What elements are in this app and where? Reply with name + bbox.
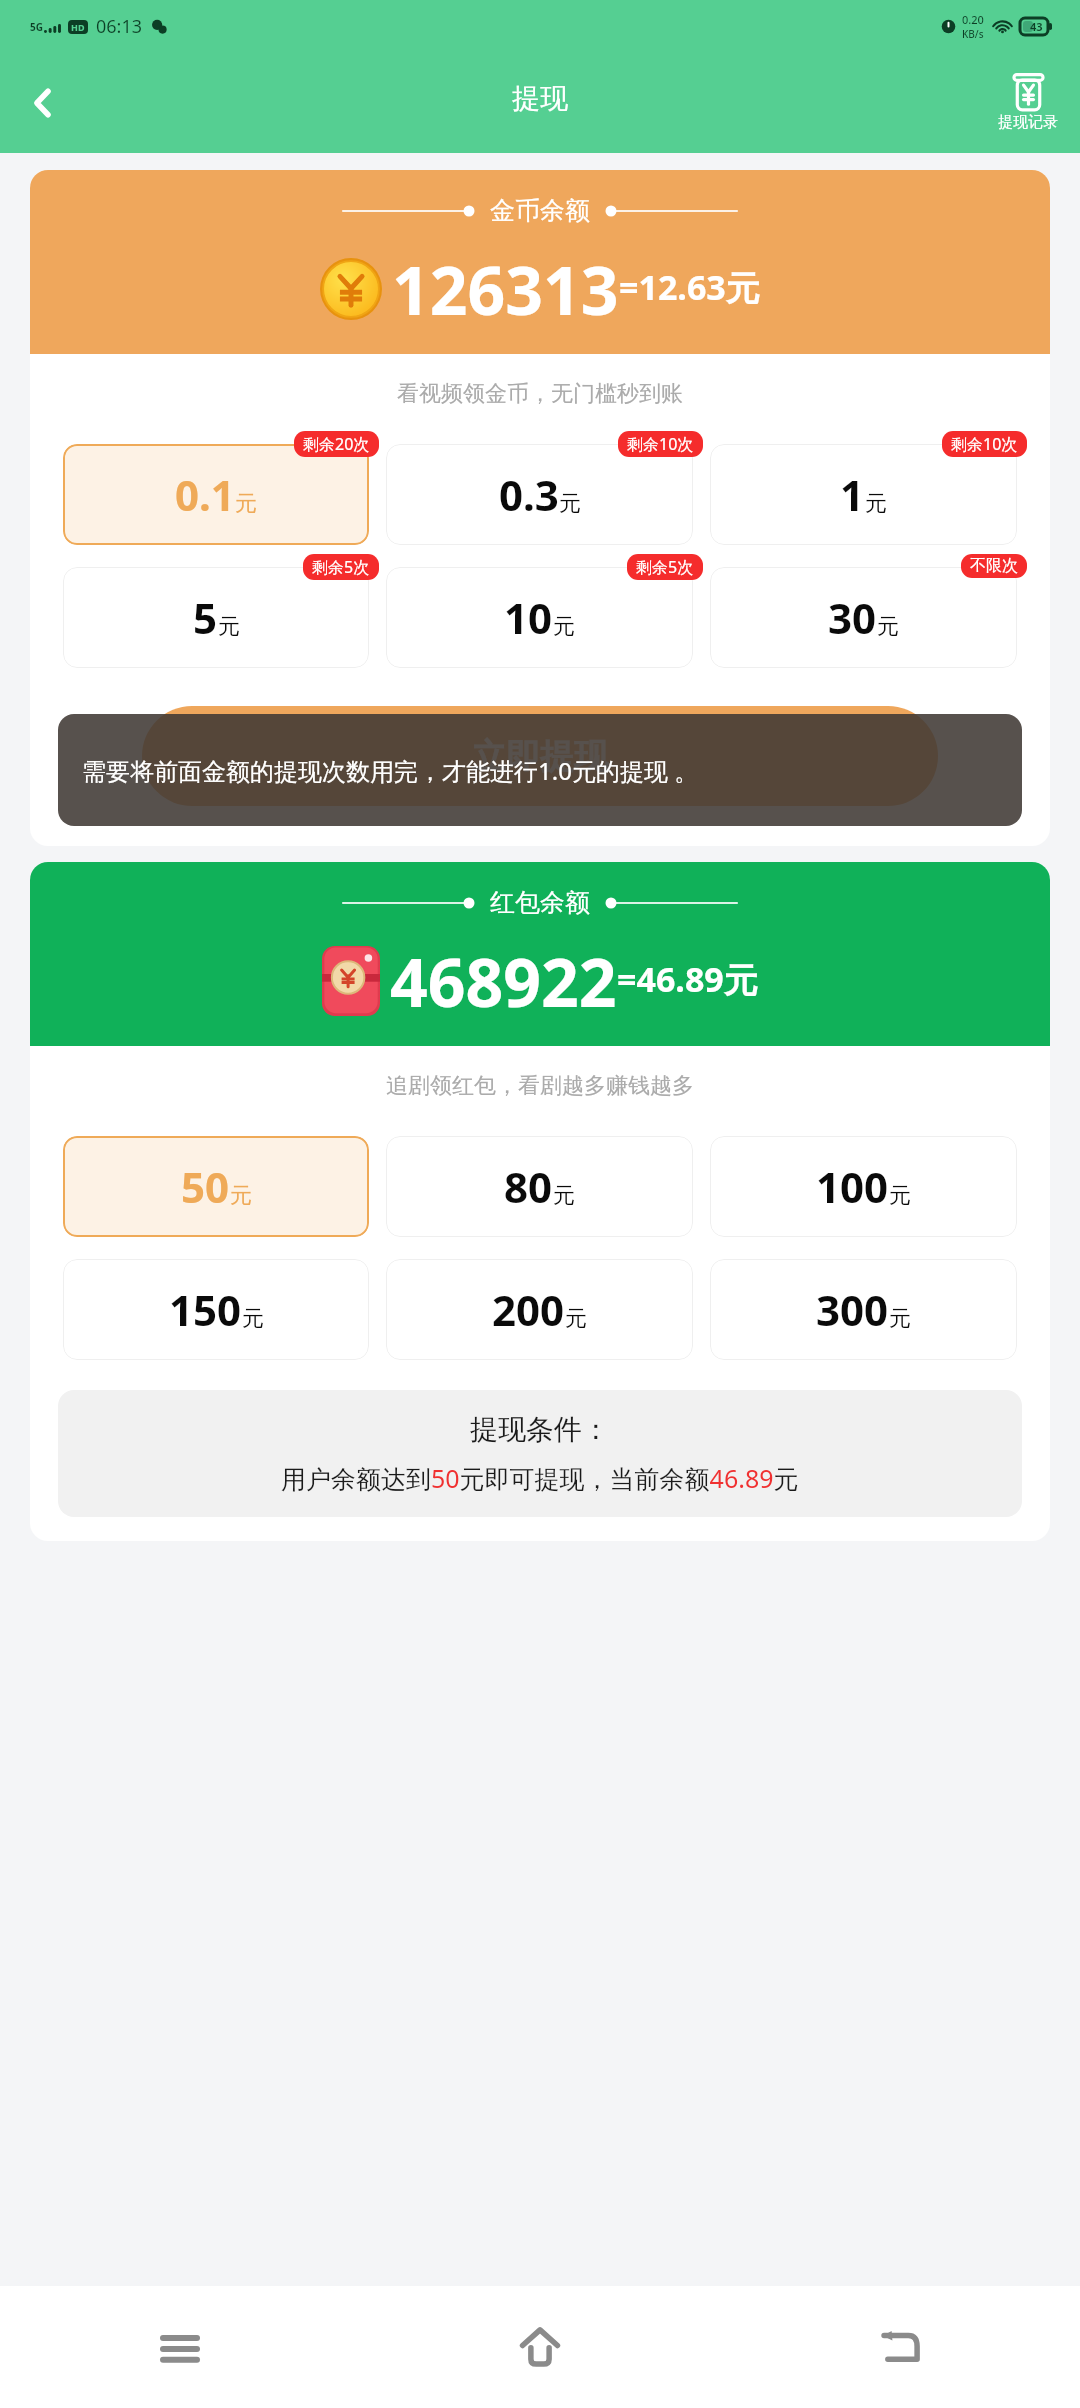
- staticText: 用户余额达到50元即可提现，当前余额46.89元: [281, 1461, 799, 1495]
- staticText: 剩余10次: [951, 433, 1018, 455]
- button[interactable]: 50: [63, 1136, 369, 1237]
- button[interactable]: 0.3: [386, 444, 693, 545]
- button[interactable]: 1: [710, 444, 1017, 545]
- button[interactable]: 150: [63, 1259, 369, 1360]
- staticText: 元: [242, 1305, 264, 1333]
- staticText: 剩余20次: [303, 433, 370, 455]
- staticText: 06:13: [96, 14, 143, 39]
- staticText: 元: [235, 490, 257, 518]
- button[interactable]: 立即提现: [142, 706, 938, 806]
- staticText: 0.1: [175, 466, 235, 523]
- staticText: 50: [181, 1158, 230, 1215]
- staticText: 元: [553, 613, 575, 641]
- staticText: 元: [559, 490, 581, 518]
- staticText: 提现: [512, 81, 568, 116]
- staticText: 需要将前面金额的提现次数用完，才能进行1.0元的提现 。: [82, 754, 699, 787]
- staticText: 元: [553, 1182, 575, 1210]
- staticText: 0.3: [499, 466, 559, 523]
- staticText: KB/s: [962, 27, 984, 41]
- button[interactable]: 300: [710, 1259, 1017, 1360]
- button[interactable]: 5: [63, 567, 369, 668]
- staticText: 10: [504, 589, 553, 646]
- staticText: 剩余5次: [312, 556, 370, 578]
- button[interactable]: Home: [360, 2286, 720, 2408]
- staticText: 元: [230, 1182, 252, 1210]
- staticText: 元: [877, 613, 899, 641]
- button[interactable]: Back: [720, 2286, 1080, 2408]
- staticText: 金币余额: [490, 195, 590, 226]
- staticText: =46.89元: [617, 956, 758, 1002]
- staticText: 元: [889, 1305, 911, 1333]
- staticText: 200: [492, 1281, 565, 1338]
- staticText: 468922: [390, 936, 617, 1026]
- staticText: 不限次: [970, 556, 1018, 576]
- staticText: 红包余额: [490, 887, 590, 918]
- staticText: 看视频领金币，无门槛秒到账: [30, 380, 1050, 408]
- button[interactable]: 200: [386, 1259, 693, 1360]
- button[interactable]: 30: [710, 567, 1017, 668]
- staticText: 30: [828, 589, 877, 646]
- button[interactable]: 0.1: [63, 444, 369, 545]
- button[interactable]: 10: [386, 567, 693, 668]
- staticText: 元: [865, 490, 887, 518]
- staticText: =12.63元: [619, 264, 760, 310]
- staticText: 80: [504, 1158, 553, 1215]
- staticText: 提现条件：: [470, 1412, 610, 1447]
- staticText: 追剧领红包，看剧越多赚钱越多: [30, 1072, 1050, 1100]
- staticText: 5G: [30, 20, 43, 34]
- staticText: 43: [1030, 19, 1043, 34]
- staticText: 5: [193, 589, 218, 646]
- staticText: 元: [565, 1305, 587, 1333]
- staticText: 剩余5次: [636, 556, 694, 578]
- staticText: 100: [816, 1158, 889, 1215]
- staticText: 126313: [392, 244, 619, 334]
- staticText: 1: [840, 466, 865, 523]
- button[interactable]: 80: [386, 1136, 693, 1237]
- button[interactable]: Recents: [0, 2286, 360, 2408]
- staticText: 元: [218, 613, 240, 641]
- staticText: 150: [169, 1281, 242, 1338]
- staticText: 剩余10次: [627, 433, 694, 455]
- staticText: 立即提现: [472, 735, 608, 778]
- button[interactable]: Back: [14, 74, 72, 132]
- staticText: HD: [71, 21, 85, 33]
- button[interactable]: 提现记录: [992, 71, 1064, 134]
- staticText: 0.20: [962, 12, 984, 27]
- staticText: 元: [889, 1182, 911, 1210]
- staticText: 300: [816, 1281, 889, 1338]
- staticText: 提现记录: [998, 113, 1058, 132]
- button[interactable]: 100: [710, 1136, 1017, 1237]
